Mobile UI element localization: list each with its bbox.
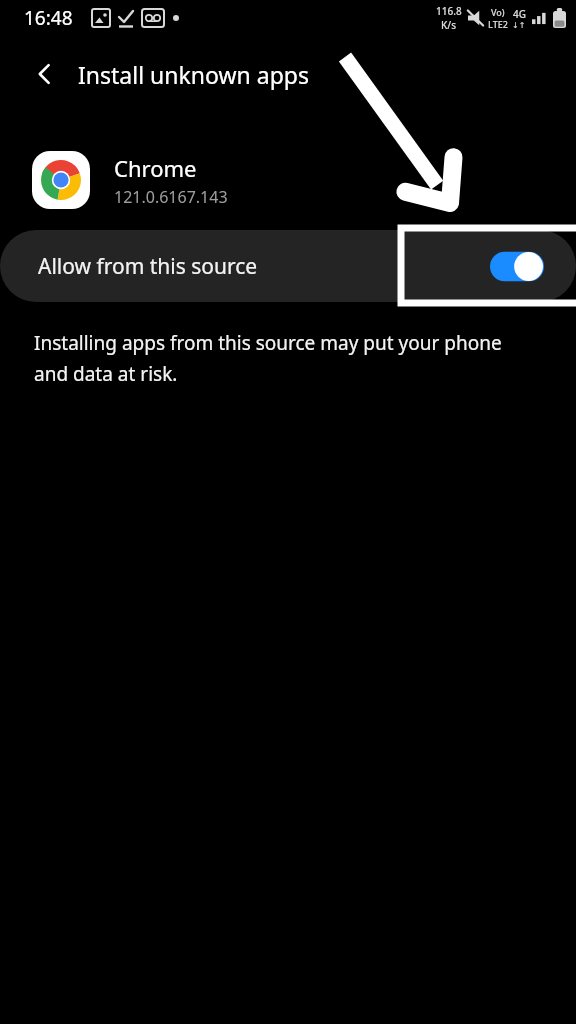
- staticText: K/s: [441, 18, 457, 32]
- staticText: Installing apps from this source may put…: [34, 330, 536, 386]
- staticText: 116.8: [436, 4, 462, 18]
- staticText: Allow from this source: [38, 252, 258, 281]
- staticText: 16:48: [24, 5, 73, 31]
- staticText: ↓↑: [512, 21, 526, 30]
- staticText: 4G: [513, 7, 526, 21]
- staticText: LTE2: [488, 18, 508, 30]
- staticText: Install unknown apps: [78, 59, 309, 90]
- button[interactable]: Allow from this source toggle, on: [490, 251, 544, 282]
- button[interactable]: Allow from this source: [0, 230, 576, 302]
- staticText: 121.0.6167.143: [114, 186, 228, 208]
- button[interactable]: Back: [22, 51, 68, 97]
- staticText: Chrome: [114, 153, 197, 183]
- staticText: Vo): [491, 6, 505, 18]
